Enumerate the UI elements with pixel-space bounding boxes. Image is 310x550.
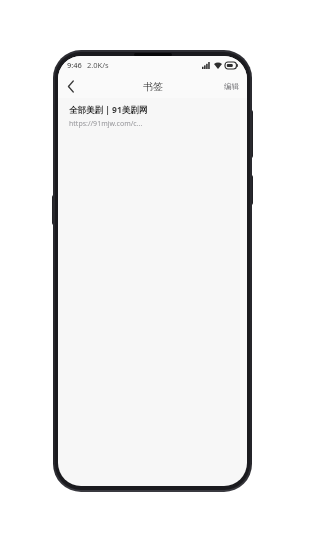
button[interactable]: 编辑 [216, 74, 247, 98]
staticText: 书签 [143, 80, 163, 93]
staticText: 9:46 [67, 60, 82, 70]
staticText: 编辑 [224, 82, 239, 91]
staticText: 全部美剧 | 91美剧网 [69, 104, 148, 116]
button[interactable]: Back [58, 74, 84, 98]
staticText: 2.0K/s [87, 60, 109, 70]
button[interactable]: 全部美剧 | 91美剧网 [58, 98, 247, 136]
staticText: https://91mjw.com/c… [69, 119, 143, 129]
